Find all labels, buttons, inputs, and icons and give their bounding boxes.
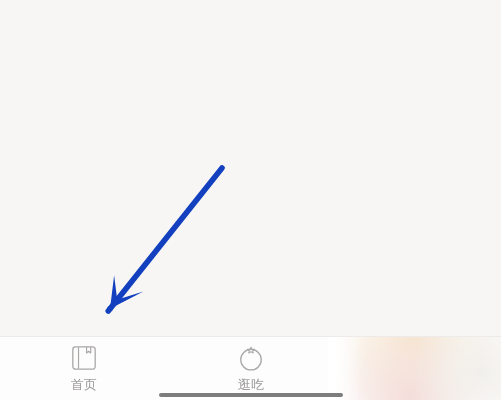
button[interactable]: 逛吃: [167, 337, 334, 400]
staticText: 逛吃: [238, 376, 264, 392]
staticText: 首页: [71, 376, 97, 392]
button[interactable]: 首页: [0, 337, 167, 400]
